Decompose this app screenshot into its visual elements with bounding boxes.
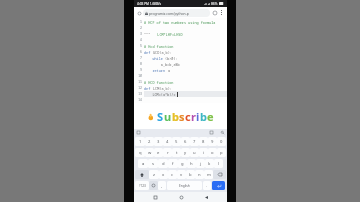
staticText: GCD(a,b): — [153, 50, 172, 55]
button[interactable]: e — [154, 148, 163, 157]
staticText: d — [162, 161, 165, 167]
staticText: . — [206, 183, 208, 189]
button[interactable]: Enter — [212, 181, 225, 190]
button[interactable]: k — [205, 159, 214, 168]
staticText: j — [200, 161, 202, 167]
button[interactable]: ?123 — [135, 181, 149, 190]
button[interactable]: English — [167, 181, 202, 190]
button[interactable]: 7 — [190, 137, 199, 146]
button[interactable]: o — [208, 148, 217, 157]
staticText: English — [179, 184, 190, 188]
button[interactable]: r — [163, 148, 172, 157]
staticText: 12 — [138, 86, 142, 90]
staticText: w — [148, 150, 152, 156]
button[interactable]: , — [158, 181, 166, 190]
staticText: s — [152, 161, 155, 167]
button[interactable]: p — [217, 148, 226, 157]
button[interactable]: Recents — [151, 193, 159, 201]
button[interactable]: h — [187, 159, 196, 168]
staticText: (b>0): — [165, 56, 178, 61]
button[interactable]: b — [186, 170, 195, 179]
staticText: b — [172, 109, 179, 124]
button[interactable]: n — [195, 170, 204, 179]
staticText: c — [185, 109, 191, 124]
button[interactable]: g — [178, 159, 187, 168]
staticText: k — [208, 161, 211, 167]
button[interactable]: w — [145, 148, 154, 157]
staticText: 3 — [157, 139, 160, 145]
button[interactable]: 9 — [208, 137, 217, 146]
button[interactable]: 4 — [163, 137, 172, 146]
button[interactable]: programiz.com/python-p — [143, 9, 210, 17]
button[interactable]: i — [199, 148, 208, 157]
staticText: LCM(a,b): — [153, 86, 172, 91]
staticText: s — [179, 109, 185, 124]
button[interactable]: z — [149, 170, 159, 179]
staticText: m — [207, 172, 211, 178]
button[interactable]: Incognito — [209, 130, 214, 135]
staticText: 3 — [140, 32, 142, 36]
button[interactable]: 0 — [217, 137, 226, 146]
staticText: 0 — [220, 139, 223, 145]
staticText: # Hcd function — [144, 44, 174, 49]
staticText: z — [153, 172, 155, 178]
staticText: r — [167, 150, 169, 156]
staticText: 13 — [138, 92, 142, 96]
staticText: S — [157, 109, 164, 124]
staticText: 6 — [140, 50, 142, 54]
button[interactable]: u — [190, 148, 199, 157]
button[interactable]: 2 — [145, 137, 154, 146]
button[interactable]: Emoji — [149, 181, 158, 190]
button[interactable]: q — [135, 148, 145, 157]
button[interactable]: Back — [202, 193, 210, 201]
staticText: q — [139, 150, 142, 156]
staticText: o — [211, 150, 214, 156]
button[interactable]: d — [158, 159, 168, 168]
button[interactable]: 5 — [172, 137, 181, 146]
button[interactable]: Shift — [135, 170, 149, 179]
button[interactable]: Backspace — [213, 170, 226, 179]
staticText: # HCD function — [144, 80, 174, 85]
staticText: a — [142, 161, 145, 167]
staticText: programiz.com/python-p — [149, 11, 189, 16]
button[interactable]: a — [138, 159, 148, 168]
staticText: 8 — [140, 62, 142, 66]
button[interactable]: v — [177, 170, 186, 179]
button[interactable]: Clipboard — [136, 130, 141, 135]
button[interactable]: Tabs — [136, 10, 142, 16]
button[interactable]: c — [168, 170, 177, 179]
staticText: LCM=(a*b)/c — [144, 92, 176, 97]
staticText: LCM*LHF=LHSD — [151, 32, 183, 37]
staticText: n — [198, 172, 201, 178]
button[interactable]: Reload — [211, 9, 218, 16]
button[interactable]: y — [181, 148, 190, 157]
button[interactable]: 6 — [181, 137, 190, 146]
button[interactable]: 3 — [154, 137, 163, 146]
staticText: 8 — [202, 139, 205, 145]
button[interactable]: Search — [220, 130, 225, 135]
staticText: 4:03 PM 1.6KB/s — [137, 2, 162, 6]
staticText: e — [157, 150, 160, 156]
staticText: ?123 — [139, 184, 146, 188]
staticText: 11 — [138, 80, 142, 84]
button[interactable]: Home — [177, 193, 185, 201]
button[interactable]: l — [214, 159, 223, 168]
button[interactable]: t — [172, 148, 181, 157]
button[interactable]: s — [148, 159, 158, 168]
staticText: def — [144, 50, 153, 55]
button[interactable]: . — [203, 181, 211, 190]
staticText: 7 — [193, 139, 196, 145]
button[interactable]: m — [204, 170, 213, 179]
staticText: x — [162, 172, 165, 178]
button[interactable]: 1 — [135, 137, 145, 146]
button[interactable]: j — [196, 159, 205, 168]
staticText: i — [196, 109, 200, 124]
staticText: 6 — [184, 139, 187, 145]
staticText: 9 — [211, 139, 214, 145]
staticText: l — [218, 161, 220, 167]
button[interactable]: f — [168, 159, 178, 168]
button[interactable]: 8 — [199, 137, 208, 146]
button[interactable]: More options — [218, 9, 225, 16]
button[interactable]: x — [159, 170, 168, 179]
staticText: p — [220, 150, 223, 156]
